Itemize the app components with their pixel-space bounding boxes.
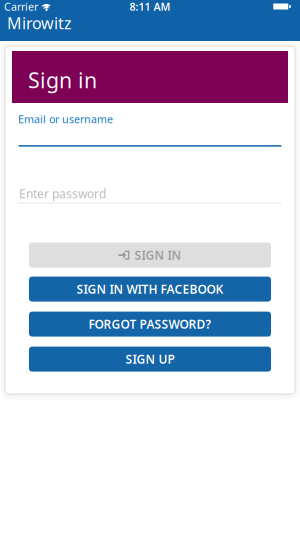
- button[interactable]: Email or username: [5, 112, 295, 147]
- staticText: Mirowitz: [7, 12, 72, 34]
- staticText: SIGN UP: [125, 351, 174, 367]
- staticText: 8:11 AM: [129, 0, 170, 14]
- staticText: SIGN IN: [134, 247, 181, 263]
- staticText: SIGN IN WITH FACEBOOK: [76, 281, 223, 297]
- button[interactable]: FORGOT PASSWORD?: [29, 312, 271, 337]
- staticText: FORGOT PASSWORD?: [88, 316, 211, 332]
- button[interactable]: SIGN IN WITH FACEBOOK: [29, 277, 271, 302]
- staticText: Sign in: [28, 66, 97, 94]
- staticText: Email or username: [18, 112, 113, 126]
- staticText: Carrier: [4, 0, 38, 14]
- button[interactable]: SIGN UP: [29, 347, 271, 372]
- staticText: Enter password: [19, 186, 106, 202]
- button[interactable]: Enter password: [5, 186, 295, 204]
- button[interactable]: SIGN IN: [29, 243, 271, 268]
